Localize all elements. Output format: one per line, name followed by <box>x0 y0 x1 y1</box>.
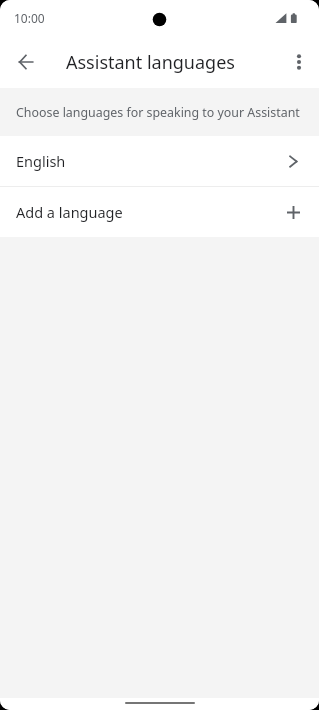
button[interactable]: Back <box>0 36 52 88</box>
staticText: Choose languages for speaking to your As… <box>16 104 300 121</box>
staticText: English <box>16 151 66 171</box>
staticText: 10:00 <box>14 10 45 26</box>
button[interactable]: English <box>0 136 319 186</box>
button[interactable]: Add a language <box>0 187 319 237</box>
button[interactable]: More options <box>279 42 319 82</box>
staticText: Add a language <box>16 202 123 222</box>
staticText: Assistant languages <box>66 50 235 75</box>
